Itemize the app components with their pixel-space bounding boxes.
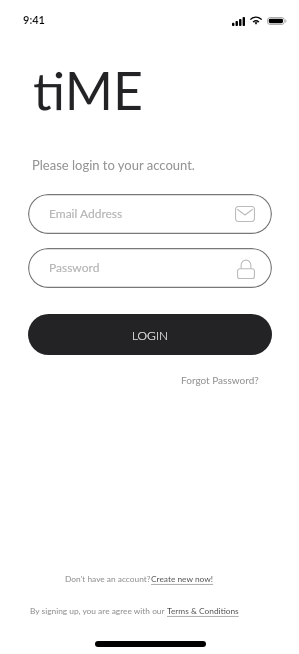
staticText: 9:41 [23,13,45,26]
staticText: Don't have an account? [65,574,151,584]
staticText: Please login to your account. [32,157,195,173]
button[interactable]: Password field [28,248,272,288]
staticText: LOGIN [132,328,169,342]
staticText: Forgot Password? [181,374,259,386]
button[interactable]: LOGIN [28,314,272,355]
staticText: By signing up, you are agree with our [30,606,167,616]
staticText: tiME [33,59,143,121]
button[interactable]: Create new now! [151,574,214,584]
staticText: Terms & Conditions [167,606,239,616]
button[interactable]: Terms & Conditions [167,606,239,616]
staticText: Password [49,260,100,274]
staticText: Create new now! [151,574,214,584]
button[interactable]: Email address field [28,194,272,234]
staticText: Email Address [49,206,123,220]
button[interactable]: Forgot Password? [177,370,263,390]
